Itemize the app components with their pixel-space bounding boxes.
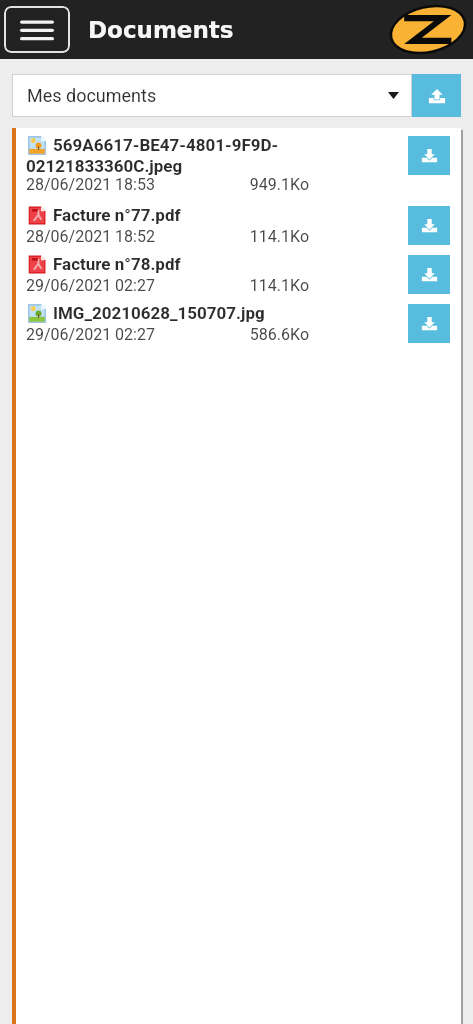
staticText: 114.1Ko bbox=[209, 227, 309, 246]
button[interactable]: Mes documents bbox=[12, 74, 412, 117]
staticText: 02121833360C.jpeg bbox=[26, 156, 183, 176]
staticText: 949.1Ko bbox=[209, 175, 309, 194]
staticText: 29/06/2021 02:27 bbox=[26, 276, 155, 295]
button[interactable]: Download bbox=[408, 304, 450, 343]
button[interactable]: Facture n°78.pdf bbox=[20, 254, 408, 296]
staticText: 29/06/2021 02:27 bbox=[26, 325, 155, 344]
staticText: 28/06/2021 18:52 bbox=[26, 227, 155, 246]
button[interactable]: 569A6617-BE47-4801-9F9D- bbox=[20, 135, 408, 195]
button[interactable]: Menu bbox=[4, 6, 70, 53]
button[interactable]: Facture n°77.pdf bbox=[20, 205, 408, 247]
button[interactable]: Upload bbox=[412, 74, 461, 117]
staticText: 28/06/2021 18:53 bbox=[26, 175, 155, 194]
staticText: 569A6617-BE47-4801-9F9D- bbox=[53, 135, 279, 155]
staticText: Facture n°77.pdf bbox=[53, 205, 181, 225]
staticText: 114.1Ko bbox=[209, 276, 309, 295]
staticText: IMG_20210628_150707.jpg bbox=[53, 303, 265, 323]
button[interactable]: Download bbox=[408, 136, 450, 175]
staticText: Documents bbox=[88, 17, 234, 44]
staticText: Mes documents bbox=[27, 85, 157, 106]
staticText: Facture n°78.pdf bbox=[53, 254, 181, 274]
button[interactable]: Download bbox=[408, 206, 450, 245]
other: Logo bbox=[389, 3, 467, 56]
button[interactable]: Download bbox=[408, 255, 450, 294]
button[interactable]: IMG_20210628_150707.jpg bbox=[20, 303, 408, 345]
staticText: 586.6Ko bbox=[209, 325, 309, 344]
